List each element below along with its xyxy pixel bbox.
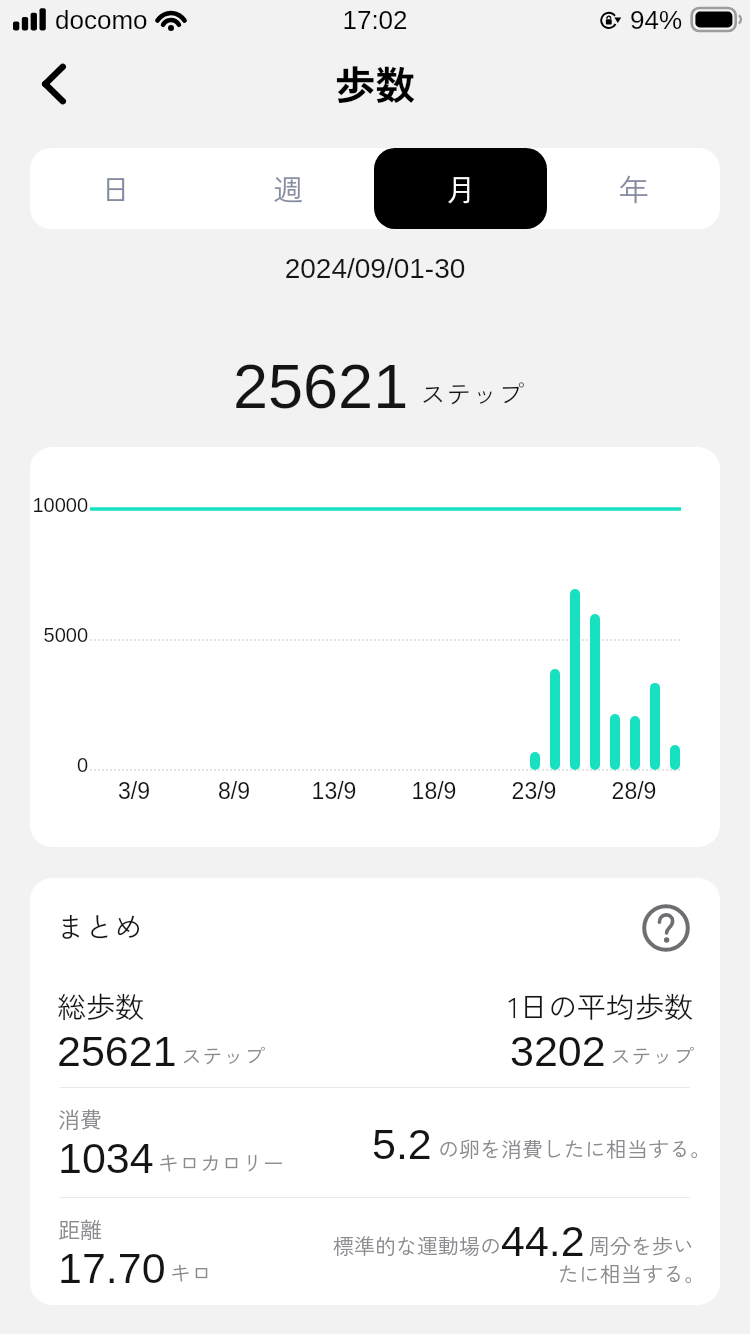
staticText: 1034 [58,1134,154,1182]
staticText: ステップ [181,1040,265,1070]
staticText: 25621 [57,1027,177,1075]
staticText: 25621 [233,351,409,421]
button[interactable]: Help [642,904,690,952]
staticText: 94% [630,5,683,34]
staticText: ステップ [610,1040,694,1070]
staticText: 歩数 [0,54,750,112]
staticText: 17:02 [0,5,750,34]
button[interactable]: 週 [202,148,374,229]
staticText: 総歩数 [57,984,145,1026]
staticText: 日 [101,166,131,209]
staticText: 28/9 [594,778,674,804]
staticText: 年 [619,166,649,209]
staticText: 周分を歩い [589,1230,694,1260]
staticText: 17.70 [58,1244,166,1292]
staticText: 5.2 [372,1120,432,1168]
staticText: 距離 [58,1212,103,1244]
staticText: 5000 [30,624,88,646]
button[interactable]: 年 [547,148,720,229]
staticText: 週 [273,166,303,209]
staticText: キロカロリー [158,1147,284,1177]
staticText: 23/9 [494,778,574,804]
staticText: 13/9 [294,778,374,804]
staticText: 3202 [510,1027,606,1075]
staticText: たに相当する。 [558,1258,705,1288]
staticText: 44.2 [501,1217,585,1265]
staticText: の卵を消費したに相当する。 [438,1133,711,1163]
staticText: 18/9 [394,778,474,804]
staticText: 10000 [30,494,88,516]
button[interactable]: 日 [30,148,202,229]
staticText: キロ [170,1257,212,1287]
staticText: 標準的な運動場の [333,1230,501,1260]
staticText: 3/9 [94,778,174,804]
button[interactable]: 月 [374,148,547,229]
staticText: 8/9 [194,778,274,804]
staticText: 1日の平均歩数 [508,984,694,1026]
staticText: 消費 [58,1102,103,1134]
staticText: 0 [30,754,88,776]
staticText: 2024/09/01-30 [0,253,750,284]
staticText: ステップ [420,374,525,412]
staticText: まとめ [56,904,144,946]
button[interactable]: Back [26,56,82,112]
staticText: 月 [446,166,476,209]
staticText: docomo [55,5,148,34]
